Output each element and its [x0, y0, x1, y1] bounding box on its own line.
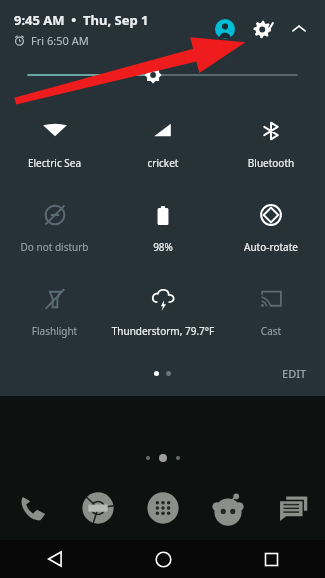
button[interactable]: Brightness — [0, 58, 325, 92]
button[interactable]: Electric Sea — [0, 106, 109, 190]
button[interactable]: Settings — [247, 12, 281, 46]
staticText: Bluetooth — [217, 156, 325, 170]
staticText: cricket — [109, 156, 217, 170]
button[interactable]: EDIT — [278, 364, 311, 383]
button[interactable]: Collapse — [283, 13, 315, 45]
staticText: 9:45 AM • Thu, Sep 1 — [14, 11, 149, 29]
staticText: Cast — [217, 324, 325, 338]
staticText: Flashlight — [0, 324, 109, 338]
button[interactable]: Reddit — [195, 476, 260, 540]
button[interactable]: Messages — [260, 476, 325, 540]
button[interactable]: Back — [0, 540, 109, 578]
button[interactable]: Home — [109, 540, 217, 578]
button[interactable]: Apps — [130, 476, 195, 540]
staticText: Auto-rotate — [217, 240, 325, 254]
staticText: Do not disturb — [0, 240, 109, 254]
staticText: Fri 6:50 AM — [31, 33, 89, 48]
button[interactable]: Cast — [217, 274, 325, 358]
button[interactable]: Do not disturb — [0, 190, 109, 274]
button[interactable]: Phone — [0, 476, 65, 540]
button[interactable]: Thunderstorm, 79.7°F — [109, 274, 217, 358]
button[interactable]: Flashlight — [0, 274, 109, 358]
button[interactable]: Bluetooth — [217, 106, 325, 190]
staticText: EDIT — [282, 366, 307, 381]
button[interactable]: User — [209, 13, 241, 45]
staticText: 98% — [109, 240, 217, 254]
button[interactable]: cricket — [109, 106, 217, 190]
button[interactable]: 98% — [109, 190, 217, 274]
staticText: Electric Sea — [0, 156, 109, 170]
button[interactable]: Recents — [217, 540, 325, 578]
button[interactable]: Auto-rotate — [217, 190, 325, 274]
staticText: Thunderstorm, 79.7°F — [109, 324, 217, 338]
button[interactable]: Chrome Beta — [65, 476, 130, 540]
